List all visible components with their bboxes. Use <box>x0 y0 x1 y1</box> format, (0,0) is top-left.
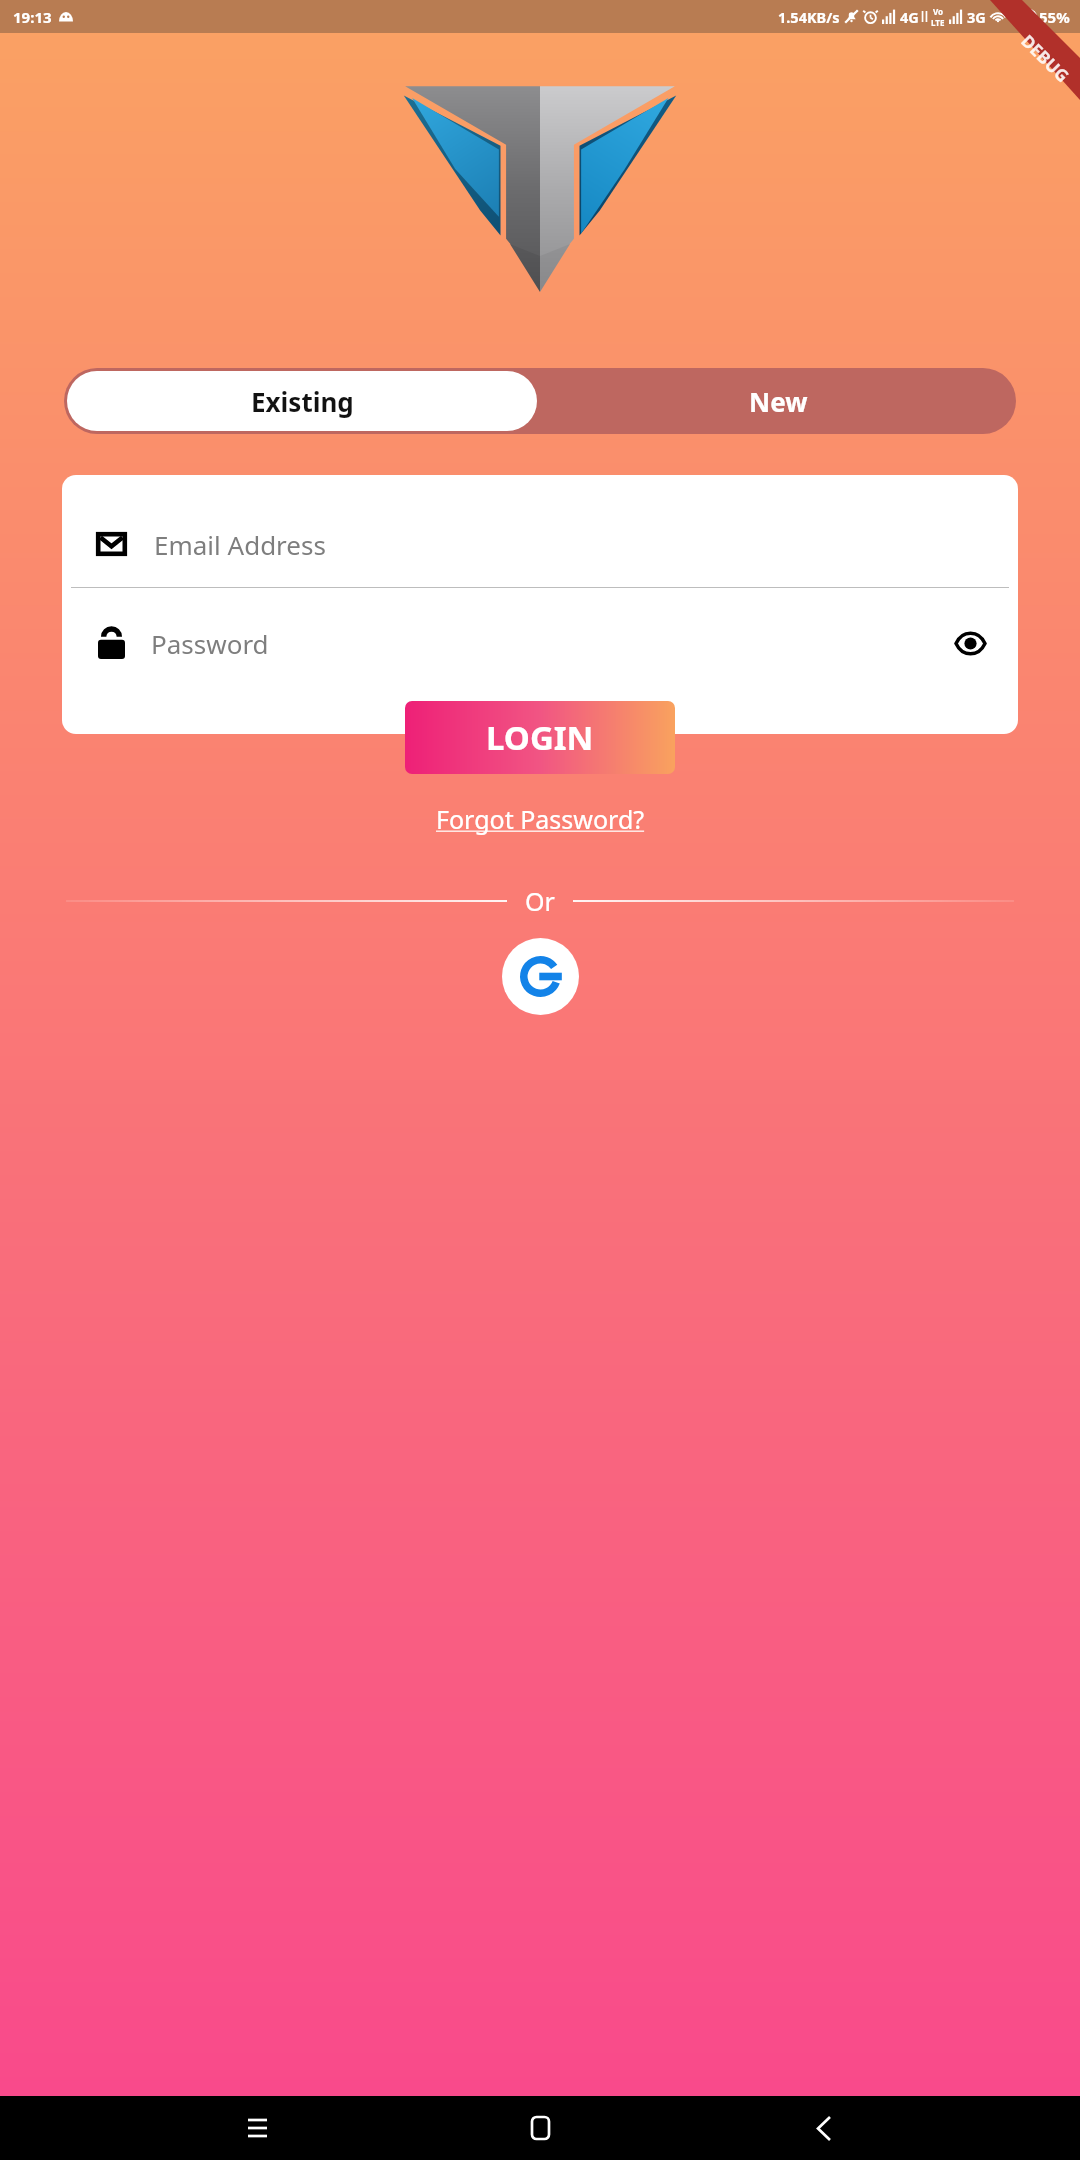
staticText: 55% <box>1039 7 1070 27</box>
staticText: 1.54KB/s <box>778 7 840 27</box>
staticText: 3G <box>967 7 986 27</box>
button[interactable]: Existing <box>67 371 537 431</box>
staticText: New <box>749 384 808 419</box>
staticText: LTE <box>931 17 945 28</box>
button[interactable]: Email Address <box>62 517 1018 571</box>
staticText: DEBUG <box>1016 29 1074 87</box>
staticText: Vo <box>933 6 944 17</box>
button[interactable]: Home <box>513 2101 567 2155</box>
button[interactable]: Show password <box>948 621 992 665</box>
staticText: Password <box>151 626 269 661</box>
button[interactable]: New <box>540 368 1016 434</box>
button[interactable]: LOGIN <box>405 701 675 774</box>
staticText: Or <box>525 884 555 918</box>
button[interactable]: Back <box>797 2101 851 2155</box>
staticText: 19:13 <box>13 7 52 27</box>
button[interactable]: Password <box>62 616 1018 670</box>
staticText: Existing <box>251 384 354 419</box>
staticText: LOGIN <box>486 715 594 760</box>
button[interactable]: Recent apps <box>230 2101 284 2155</box>
staticText: Email Address <box>154 527 326 562</box>
button[interactable]: Sign in with Google <box>502 938 579 1015</box>
staticText: Forgot Password? <box>436 802 645 836</box>
staticText: 4G <box>900 7 919 27</box>
button[interactable]: Forgot Password? <box>422 796 659 842</box>
